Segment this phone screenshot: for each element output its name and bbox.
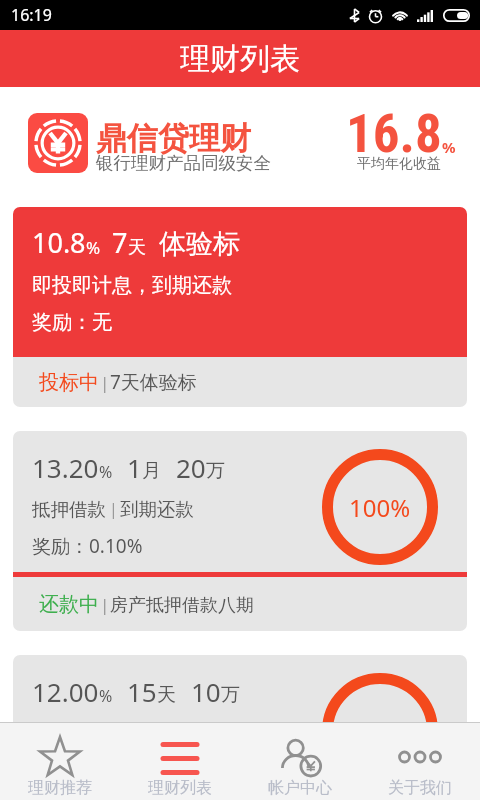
staticText: 10 [191, 674, 221, 709]
staticText: 7天体验标 [110, 369, 197, 395]
staticText: 鼎信贷理财 [96, 119, 251, 158]
staticText: 万 [221, 683, 240, 707]
staticText: % [86, 236, 101, 259]
staticText: | [100, 371, 110, 394]
staticText: 抵押借款 [32, 498, 106, 521]
staticText: 帐户中心 [268, 778, 332, 798]
other: 理财列表 [163, 741, 197, 773]
button[interactable]: 12.00 [13, 655, 467, 800]
staticText: 银行理财产品同级安全 [96, 152, 271, 174]
staticText: 13.20 [32, 450, 99, 485]
button[interactable]: 13.20 [13, 431, 467, 631]
staticText: 15 [127, 674, 157, 709]
staticText: 平均年化收益 [357, 155, 441, 173]
staticText: 奖励：无 [32, 310, 112, 335]
staticText: % [99, 685, 113, 707]
other: 关于我们 [397, 745, 443, 769]
staticText: 20 [176, 450, 206, 485]
staticText: 100% [349, 491, 411, 524]
staticText: 投标中 [39, 370, 99, 395]
button[interactable]: 理财列表 [120, 723, 240, 800]
staticText: 1 [127, 450, 142, 485]
staticText: 理财列表 [148, 778, 212, 798]
staticText: 还款中 [39, 592, 99, 617]
button[interactable]: 帐户中心 [240, 723, 360, 800]
staticText: 月 [142, 459, 161, 483]
staticText: 16.8 [346, 103, 442, 165]
staticText: 天 [128, 236, 146, 259]
staticText: | [100, 593, 110, 616]
staticText: | [109, 498, 118, 520]
staticText: 10.8 [32, 224, 86, 261]
staticText: 理财列表 [180, 40, 300, 78]
other: 帐户中心 [278, 738, 322, 776]
staticText: 7 [112, 224, 128, 261]
other: 理财推荐 [38, 737, 82, 777]
staticText: 关于我们 [388, 778, 452, 798]
staticText: 即投即计息，到期还款 [32, 273, 232, 298]
staticText: 16:19 [11, 4, 52, 26]
button[interactable]: 关于我们 [360, 723, 480, 800]
staticText: 房产抵押借款八期 [110, 594, 254, 617]
staticText: 体验标 [159, 227, 240, 261]
staticText: 12.00 [32, 674, 99, 709]
staticText: 奖励：0.10% [32, 533, 143, 559]
staticText: 理财推荐 [28, 778, 92, 798]
staticText: % [99, 461, 113, 483]
staticText: % [442, 137, 456, 157]
staticText: 天 [157, 683, 176, 707]
button[interactable]: 理财推荐 [0, 723, 120, 800]
staticText: 到期还款 [120, 498, 194, 521]
button[interactable]: 10.8 [13, 207, 467, 407]
staticText: 万 [206, 459, 225, 483]
